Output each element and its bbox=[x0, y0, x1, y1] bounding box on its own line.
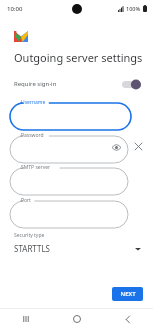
button[interactable]: Home bbox=[51, 309, 102, 329]
staticText: Username bbox=[21, 99, 46, 106]
button[interactable]: Back bbox=[102, 309, 153, 329]
button[interactable]: Username bbox=[10, 98, 131, 125]
staticText: Port bbox=[21, 197, 31, 204]
button[interactable]: Security type bbox=[0, 232, 153, 254]
button[interactable]: Require sign-in bbox=[0, 76, 153, 92]
button[interactable]: Require sign-in toggle bbox=[122, 79, 141, 90]
staticText: SMTP server bbox=[21, 164, 51, 171]
staticText: NEXT bbox=[120, 290, 136, 298]
button[interactable]: NEXT bbox=[112, 287, 143, 301]
staticText: Security type bbox=[14, 232, 45, 239]
button[interactable]: Recents bbox=[0, 309, 51, 329]
staticText: Outgoing server settings bbox=[14, 50, 143, 65]
button[interactable]: Show password bbox=[111, 142, 122, 153]
staticText: Require sign-in bbox=[14, 80, 57, 88]
button[interactable]: Port bbox=[10, 196, 128, 223]
staticText: 100% bbox=[126, 5, 141, 12]
button[interactable]: Clear bbox=[132, 138, 145, 151]
staticText: Password bbox=[21, 132, 44, 139]
staticText: 10:00 bbox=[7, 5, 23, 13]
staticText: STARTTLS bbox=[14, 243, 51, 254]
button[interactable]: SMTP server bbox=[10, 163, 128, 190]
button[interactable]: Password bbox=[10, 131, 128, 158]
